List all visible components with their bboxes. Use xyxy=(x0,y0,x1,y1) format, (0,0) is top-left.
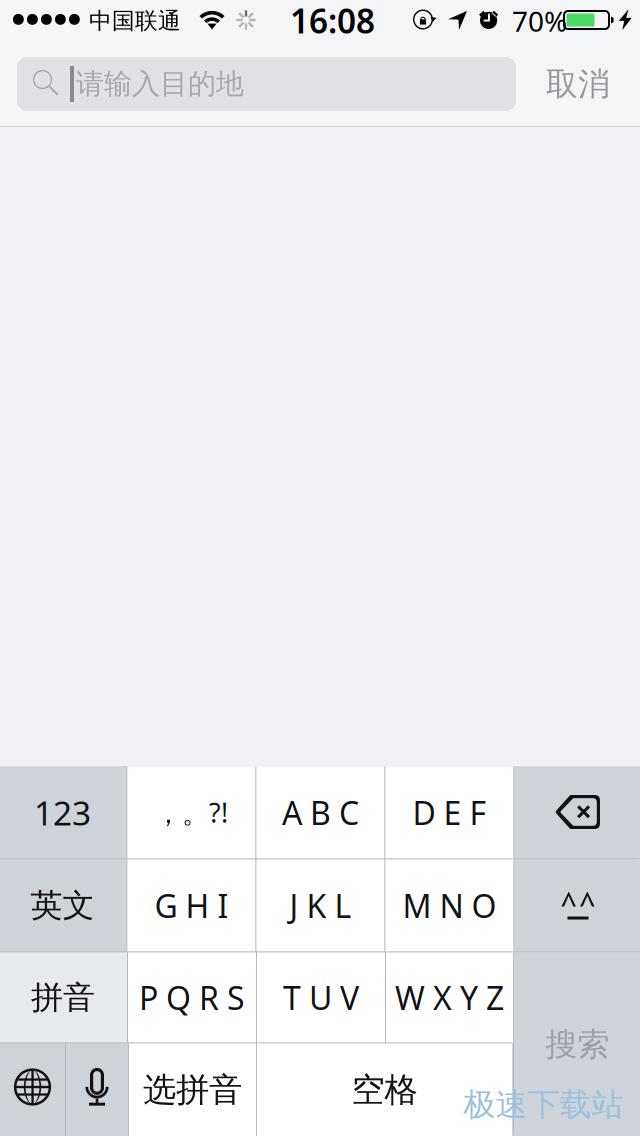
staticText: P Q R S xyxy=(139,976,245,1019)
button[interactable]: 搜索 xyxy=(514,952,640,1136)
button[interactable]: D E F xyxy=(385,766,513,858)
button[interactable]: M N O xyxy=(385,859,513,951)
button[interactable]: 空格 xyxy=(257,1043,512,1136)
button[interactable]: J K L xyxy=(256,859,384,951)
staticText: 空格 xyxy=(351,1069,417,1110)
button[interactable]: Switch keyboard xyxy=(0,1043,65,1136)
staticText: A B C xyxy=(282,791,359,834)
button[interactable]: Delete xyxy=(514,766,640,858)
staticText: ，。?! xyxy=(155,795,228,830)
button[interactable]: 123 xyxy=(0,766,126,858)
staticText: G H I xyxy=(154,884,228,927)
button[interactable]: G H I xyxy=(127,859,255,951)
button[interactable]: ，。?! xyxy=(127,766,255,858)
staticText: 拼音 xyxy=(31,978,95,1017)
staticText: 中国联通 xyxy=(89,7,181,35)
staticText: W X Y Z xyxy=(395,976,504,1019)
staticText: M N O xyxy=(402,884,496,927)
staticText: 搜索 xyxy=(545,1025,609,1064)
staticText: 70% xyxy=(512,2,567,40)
button[interactable]: 请输入目的地 xyxy=(17,57,516,111)
staticText: 选拼音 xyxy=(143,1069,242,1110)
button[interactable]: W X Y Z xyxy=(386,952,513,1042)
staticText: 123 xyxy=(34,790,91,835)
staticText: 极速下载站 xyxy=(463,1085,623,1124)
staticText: 英文 xyxy=(30,886,94,925)
button[interactable]: Dictation xyxy=(66,1043,128,1136)
button[interactable]: 取消 xyxy=(530,57,626,111)
button[interactable]: P Q R S xyxy=(128,952,256,1042)
staticText: 请输入目的地 xyxy=(76,67,244,101)
staticText: J K L xyxy=(289,884,351,927)
button[interactable]: A B C xyxy=(256,766,384,858)
button[interactable]: 英文 xyxy=(0,859,126,951)
staticText: D E F xyxy=(412,791,486,834)
button[interactable]: 选拼音 xyxy=(129,1043,256,1136)
staticText: 16:08 xyxy=(290,0,375,43)
button[interactable]: Emoticons xyxy=(514,859,640,951)
button[interactable]: T U V xyxy=(257,952,385,1042)
staticText: 取消 xyxy=(546,64,610,104)
staticText: T U V xyxy=(283,976,359,1019)
button[interactable]: 拼音 xyxy=(0,952,127,1042)
